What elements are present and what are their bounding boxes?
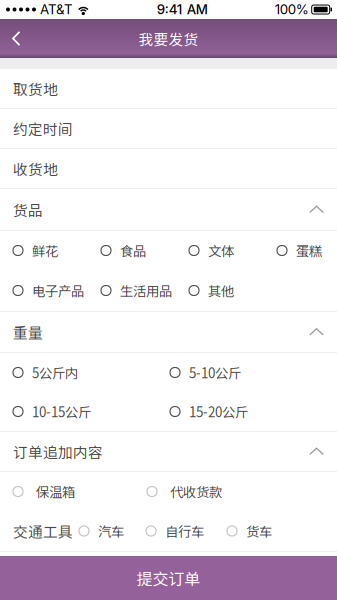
button[interactable]: 收货地 [0,149,337,188]
button[interactable]: 提交订单 [0,556,337,600]
staticText: 约定时间 [13,118,73,139]
button[interactable]: 取货地 [0,69,337,108]
button[interactable]: 文体 [189,230,277,270]
staticText: 100% [275,1,309,17]
staticText: 文体 [208,241,234,260]
button[interactable]: 约定时间 [0,109,337,148]
button[interactable]: 自行车 [146,511,227,551]
staticText: 订单追加内容 [13,441,103,462]
staticText: 生活用品 [120,281,172,300]
staticText: 其他 [208,281,234,300]
staticText: 电子产品 [32,281,84,300]
button[interactable]: 15-20公斤 [170,391,310,431]
button[interactable]: 电子产品 [13,270,101,310]
staticText: 10-15公斤 [32,402,91,421]
staticText: 我要发货 [138,28,198,49]
button[interactable]: 其他 [189,270,277,310]
button[interactable]: 5公斤内 [13,352,170,392]
button[interactable]: 鲜花 [13,230,101,270]
button[interactable]: 货品 [0,189,337,230]
button[interactable]: 生活用品 [101,270,189,310]
staticText: AT&T [40,1,73,17]
button[interactable]: 食品 [101,230,189,270]
staticText: 鲜花 [32,241,58,260]
button[interactable]: 代收货款 [147,471,287,511]
staticText: 食品 [120,241,146,260]
staticText: 5公斤内 [32,363,78,382]
button[interactable]: 5-10公斤 [170,352,310,392]
button[interactable]: 蛋糕 [277,230,337,270]
button[interactable]: 订单追加内容 [0,432,337,471]
button[interactable]: 汽车 [79,511,146,551]
staticText: 取货地 [13,78,58,99]
staticText: 交通工具 [13,520,73,542]
staticText: 保温箱 [36,482,75,501]
button[interactable]: Back [0,19,60,58]
staticText: 提交订单 [136,566,200,590]
staticText: 代收货款 [170,482,222,501]
button[interactable]: 保温箱 [13,471,147,511]
button[interactable]: 重量 [0,312,337,352]
staticText: 5-10公斤 [189,363,241,382]
staticText: 货品 [13,199,43,220]
staticText: 重量 [13,321,43,343]
staticText: 蛋糕 [296,241,322,260]
staticText: 自行车 [165,521,204,541]
staticText: 15-20公斤 [189,402,248,421]
button[interactable]: 10-15公斤 [13,391,170,431]
staticText: 9:41 AM [157,1,208,17]
staticText: 货车 [246,521,272,541]
button[interactable]: 货车 [227,511,287,551]
staticText: 收货地 [13,158,58,179]
staticText: 汽车 [98,521,124,541]
